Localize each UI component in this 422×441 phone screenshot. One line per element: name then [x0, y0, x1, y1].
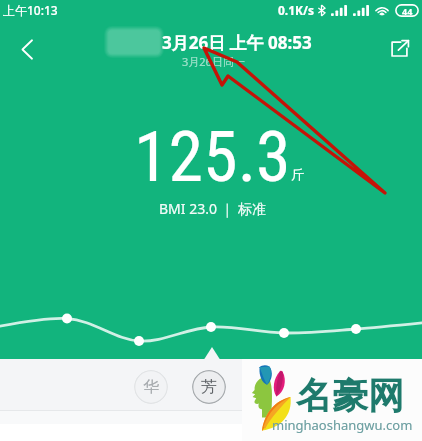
- button[interactable]: 芳: [192, 370, 226, 404]
- staticText: 3月26日同一: [182, 54, 245, 69]
- staticText: 上午10:13: [3, 2, 58, 18]
- staticText: minghaoshangwu.com: [272, 416, 413, 434]
- staticText: 44: [402, 5, 413, 17]
- button[interactable]: Back: [7, 29, 47, 69]
- staticText: 3月26日 上午 08:53: [162, 31, 312, 54]
- button[interactable]: 华: [134, 370, 168, 404]
- staticText: 芳: [201, 377, 217, 397]
- staticText: 华: [143, 377, 159, 397]
- staticText: 斤: [291, 166, 304, 182]
- staticText: 名豪网: [296, 373, 404, 418]
- staticText: 0.1K/s: [278, 2, 315, 18]
- staticText: BMI 23.0 ｜ 标准: [159, 199, 266, 218]
- button[interactable]: Share: [379, 29, 419, 69]
- staticText: 125.3: [134, 116, 291, 198]
